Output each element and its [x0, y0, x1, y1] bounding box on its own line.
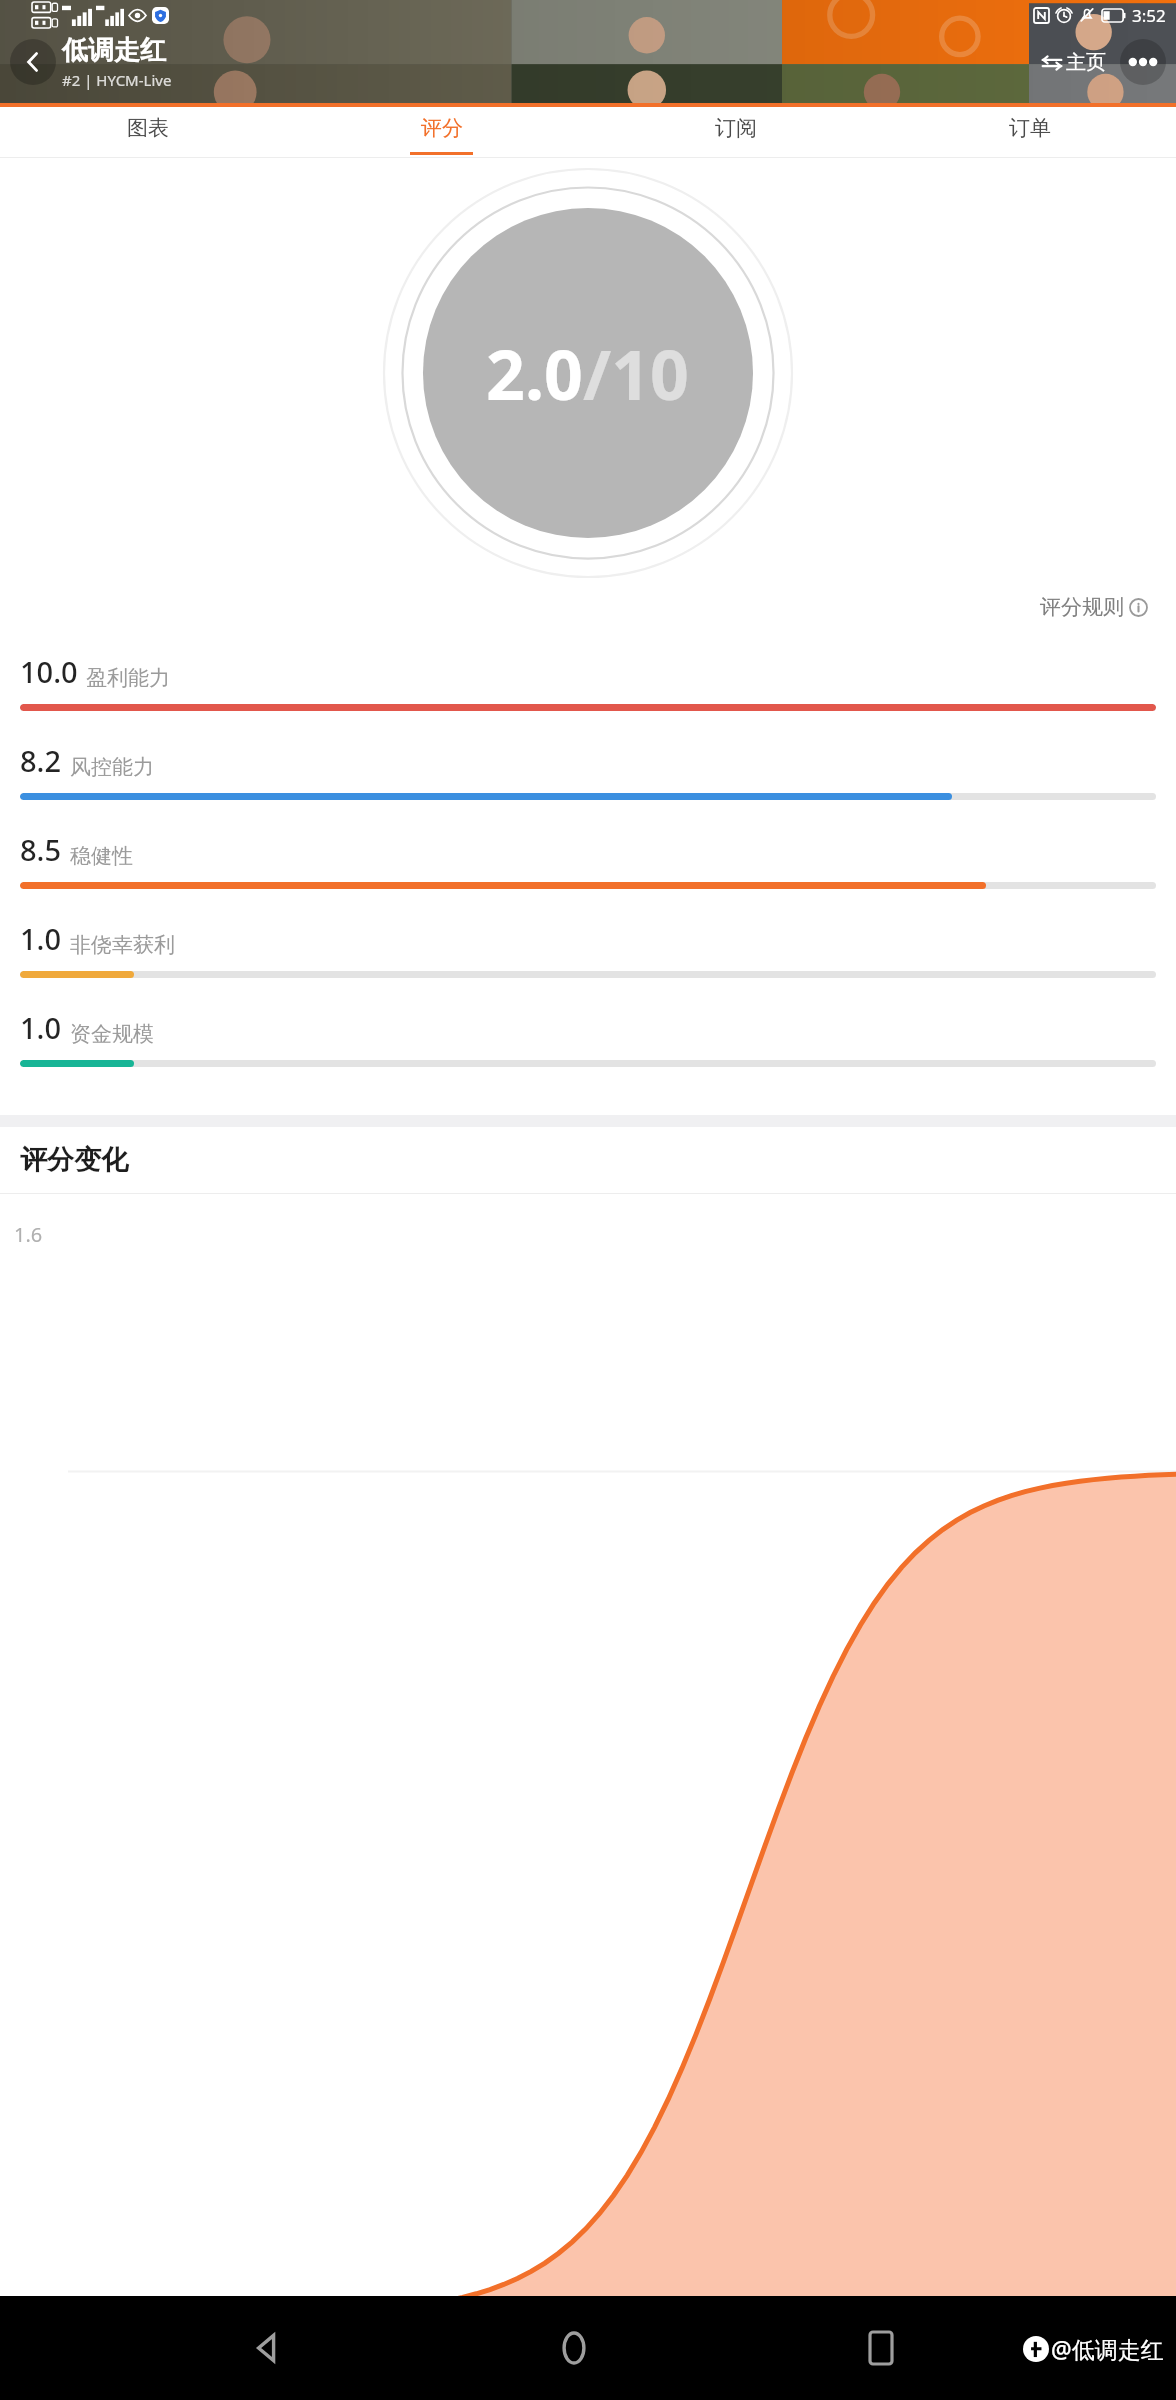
button[interactable]: 图表 [0, 107, 294, 158]
button[interactable]: Back [10, 39, 56, 85]
staticText: 1.0 [20, 919, 62, 958]
button[interactable]: 订单 [882, 107, 1176, 158]
staticText: 非侥幸获利 [70, 932, 175, 958]
staticText: 10.0 [20, 652, 78, 691]
button[interactable]: 评分规则 [1034, 588, 1154, 626]
button[interactable]: More options [1120, 39, 1166, 85]
staticText: 主页 [1066, 50, 1106, 75]
staticText: 1.0 [20, 1008, 62, 1047]
button[interactable]: 订阅 [588, 107, 882, 158]
staticText: 图表 [127, 115, 169, 141]
staticText: 评分变化 [20, 1143, 128, 1177]
button[interactable]: 评分 [294, 107, 588, 158]
button[interactable]: Back [227, 2308, 307, 2388]
staticText: /10 [583, 327, 690, 420]
staticText: 2.0 [486, 327, 583, 420]
staticText: 风控能力 [70, 754, 154, 780]
staticText: 评分 [421, 115, 463, 141]
staticText: 1.6 [14, 1221, 43, 1248]
button[interactable]: 主页 [1035, 50, 1112, 75]
staticText: 8.2 [20, 741, 62, 780]
staticText: 订阅 [715, 115, 757, 141]
staticText: 稳健性 [70, 843, 133, 869]
staticText: 低调走红 [62, 34, 166, 67]
staticText: 8.5 [20, 830, 62, 869]
staticText: 3:52 [1132, 4, 1166, 27]
staticText: #2 | HYCM-Live [62, 70, 172, 90]
staticText: 盈利能力 [86, 665, 170, 691]
staticText: 资金规模 [70, 1021, 154, 1047]
staticText: 评分规则 [1040, 594, 1124, 620]
button[interactable]: Recent apps [841, 2308, 921, 2388]
staticText: @低调走红 [1051, 2333, 1164, 2364]
button[interactable]: Home [534, 2308, 614, 2388]
staticText: 订单 [1009, 115, 1051, 141]
